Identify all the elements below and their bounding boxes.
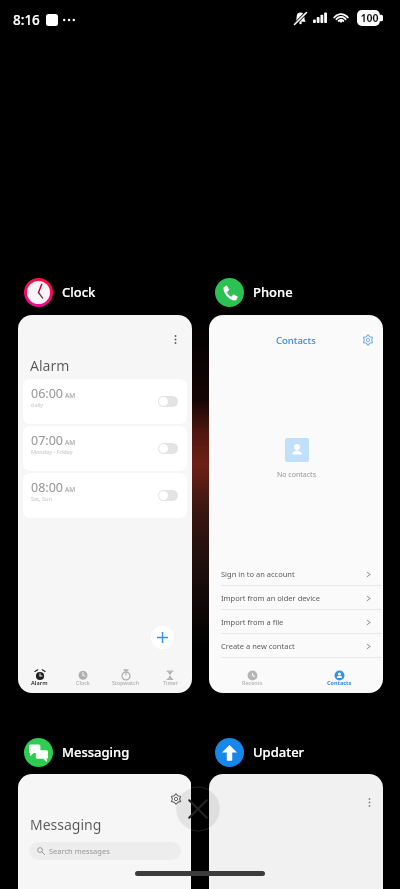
button[interactable]: Timer xyxy=(148,669,192,688)
staticText: Messaging xyxy=(30,815,102,834)
button[interactable]: Alarm xyxy=(18,669,61,688)
button[interactable]: Sign in to an account xyxy=(209,562,383,586)
staticText: Alarm xyxy=(30,356,70,375)
staticText: 06:00 xyxy=(31,385,63,402)
button[interactable]: Import from an older device xyxy=(209,586,383,610)
staticText: 07:00 xyxy=(31,432,63,449)
button[interactable]: Add alarm xyxy=(151,626,174,649)
button[interactable]: More options xyxy=(209,774,383,889)
button[interactable]: More options xyxy=(361,794,377,810)
staticText: AM xyxy=(65,485,76,494)
staticText: Create a new contact xyxy=(221,641,295,651)
staticText: Phone xyxy=(253,283,293,301)
button[interactable]: Search messages xyxy=(29,842,181,860)
staticText: Clock xyxy=(62,283,96,301)
button[interactable]: Close all xyxy=(176,787,220,831)
button[interactable]: Import from a file xyxy=(209,610,383,634)
button[interactable]: Create a new contact xyxy=(209,634,383,658)
button[interactable]: Settings xyxy=(18,774,192,889)
staticText: AM xyxy=(65,438,76,447)
staticText: Import from an older device xyxy=(221,593,320,603)
staticText: 8:16 xyxy=(13,11,40,29)
staticText: Sat, Sun xyxy=(31,495,52,502)
button[interactable]: Toggle alarm xyxy=(158,396,178,407)
staticText: Timer xyxy=(163,679,178,686)
button[interactable]: More options xyxy=(167,331,183,347)
button[interactable]: Settings xyxy=(362,334,374,346)
staticText: Messaging xyxy=(62,743,130,761)
staticText: Stopwatch xyxy=(112,679,140,686)
staticText: Monday - Friday xyxy=(31,448,73,455)
button[interactable]: Settings xyxy=(170,793,182,805)
button[interactable]: Clock xyxy=(61,669,104,688)
button[interactable]: 08:00 xyxy=(23,473,187,518)
button[interactable]: Messaging xyxy=(24,736,130,768)
button[interactable]: Clock xyxy=(24,276,96,308)
button[interactable]: Toggle alarm xyxy=(158,490,178,501)
button[interactable]: More options xyxy=(18,315,192,693)
staticText: 100 xyxy=(358,11,381,25)
staticText: Recents xyxy=(242,679,263,686)
button[interactable]: Stopwatch xyxy=(104,669,148,688)
staticText: Contacts xyxy=(276,334,316,347)
staticText: Contacts xyxy=(327,679,352,686)
button[interactable]: Toggle alarm xyxy=(158,443,178,454)
button[interactable]: Updater xyxy=(215,736,305,768)
staticText: Alarm xyxy=(31,679,48,686)
button[interactable]: Contacts xyxy=(209,315,383,693)
staticText: No contacts xyxy=(277,470,316,480)
button[interactable]: Phone xyxy=(215,276,293,308)
staticText: Search messages xyxy=(49,846,110,856)
staticText: Clock xyxy=(76,679,90,686)
staticText: Sign in to an account xyxy=(221,569,295,579)
staticText: daily xyxy=(31,401,44,408)
staticText: AM xyxy=(65,391,76,400)
button[interactable]: 07:00 xyxy=(23,426,187,471)
staticText: 08:00 xyxy=(31,479,63,496)
staticText: Updater xyxy=(253,743,305,761)
button[interactable]: 06:00 xyxy=(23,379,187,424)
staticText: Import from a file xyxy=(221,617,284,627)
button[interactable]: Recents xyxy=(209,670,296,688)
button[interactable]: Contacts xyxy=(296,670,383,688)
